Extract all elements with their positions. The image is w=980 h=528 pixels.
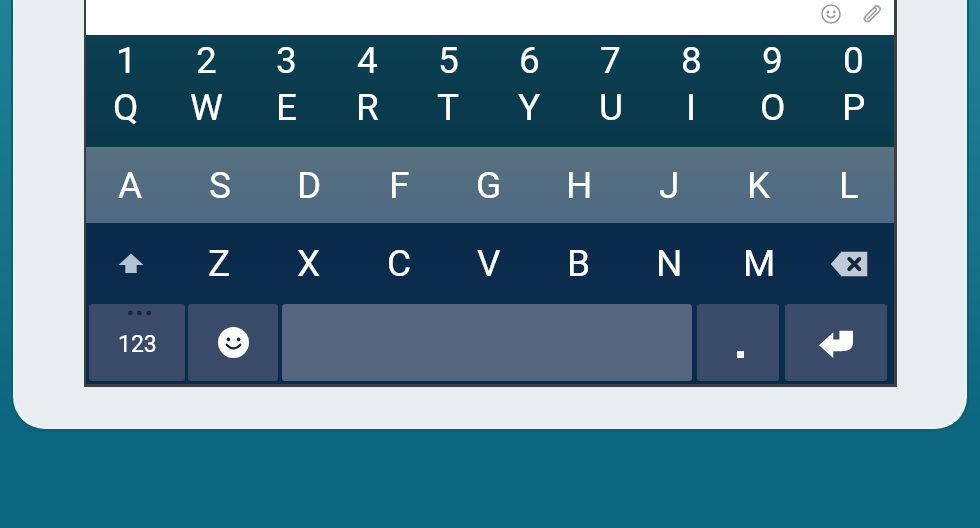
button[interactable]: 6: [489, 35, 570, 86]
staticText: 9: [762, 39, 783, 82]
button[interactable]: Insert emoji: [821, 4, 841, 24]
button[interactable]: J: [624, 147, 714, 223]
button[interactable]: P: [813, 86, 894, 128]
staticText: E: [276, 86, 298, 128]
staticText: 1: [116, 39, 137, 82]
button[interactable]: 9: [732, 35, 813, 86]
staticText: P: [842, 86, 866, 128]
staticText: B: [567, 242, 591, 285]
button[interactable]: M: [714, 223, 804, 304]
staticText: Z: [208, 242, 231, 285]
staticText: S: [209, 164, 231, 207]
staticText: W: [190, 86, 223, 128]
button[interactable]: R: [327, 86, 408, 128]
staticText: Y: [518, 86, 541, 128]
button[interactable]: E: [246, 86, 327, 128]
button[interactable]: 5: [408, 35, 489, 86]
button[interactable]: T: [408, 86, 489, 128]
staticText: M: [743, 242, 776, 285]
staticText: O: [760, 86, 786, 128]
staticText: F: [389, 164, 410, 207]
staticText: K: [747, 164, 771, 207]
staticText: L: [839, 164, 859, 207]
button[interactable]: Y: [489, 86, 570, 128]
staticText: X: [297, 242, 321, 285]
button[interactable]: D: [264, 147, 354, 223]
button[interactable]: Q: [86, 86, 166, 128]
button[interactable]: F: [354, 147, 444, 223]
button[interactable]: 2: [166, 35, 246, 86]
staticText: V: [477, 242, 501, 285]
button[interactable]: Emoji keyboard: [188, 304, 278, 381]
staticText: T: [437, 86, 460, 128]
button[interactable]: U: [570, 86, 651, 128]
staticText: I: [686, 86, 697, 128]
staticText: G: [476, 164, 502, 207]
button[interactable]: 3: [246, 35, 327, 86]
staticText: Q: [113, 86, 139, 128]
button[interactable]: I: [651, 86, 732, 128]
button[interactable]: V: [444, 223, 534, 304]
staticText: C: [387, 242, 412, 285]
staticText: 8: [681, 39, 702, 82]
staticText: R: [356, 86, 379, 128]
button[interactable]: Shift: [86, 223, 175, 304]
staticText: 123: [118, 331, 157, 358]
staticText: 5: [438, 39, 459, 82]
staticText: H: [566, 164, 593, 207]
button[interactable]: Attach file: [861, 3, 883, 25]
staticText: 6: [519, 39, 540, 82]
staticText: J: [659, 164, 680, 207]
staticText: 2: [196, 39, 217, 82]
button[interactable]: B: [534, 223, 624, 304]
button[interactable]: K: [714, 147, 804, 223]
button[interactable]: N: [624, 223, 714, 304]
button[interactable]: Enter: [785, 304, 887, 381]
button[interactable]: W: [166, 86, 246, 128]
button[interactable]: L: [804, 147, 894, 223]
button[interactable]: O: [732, 86, 813, 128]
staticText: 4: [357, 39, 378, 82]
button[interactable]: 8: [651, 35, 732, 86]
button[interactable]: G: [444, 147, 534, 223]
staticText: N: [656, 242, 683, 285]
button[interactable]: 0: [813, 35, 894, 86]
button[interactable]: Backspace: [804, 223, 894, 304]
button[interactable]: A: [86, 147, 175, 223]
button[interactable]: Z: [175, 223, 264, 304]
button[interactable]: 4: [327, 35, 408, 86]
button[interactable]: 1: [86, 35, 166, 86]
staticText: U: [599, 86, 623, 128]
button[interactable]: 123: [89, 304, 185, 381]
staticText: A: [118, 164, 143, 207]
button[interactable]: H: [534, 147, 624, 223]
staticText: 7: [600, 39, 621, 82]
staticText: 0: [843, 39, 864, 82]
button[interactable]: C: [354, 223, 444, 304]
button[interactable]: [697, 304, 779, 381]
staticText: 3: [276, 39, 297, 82]
button[interactable]: 7: [570, 35, 651, 86]
staticText: D: [297, 164, 322, 207]
button[interactable]: S: [175, 147, 264, 223]
button[interactable]: X: [264, 223, 354, 304]
